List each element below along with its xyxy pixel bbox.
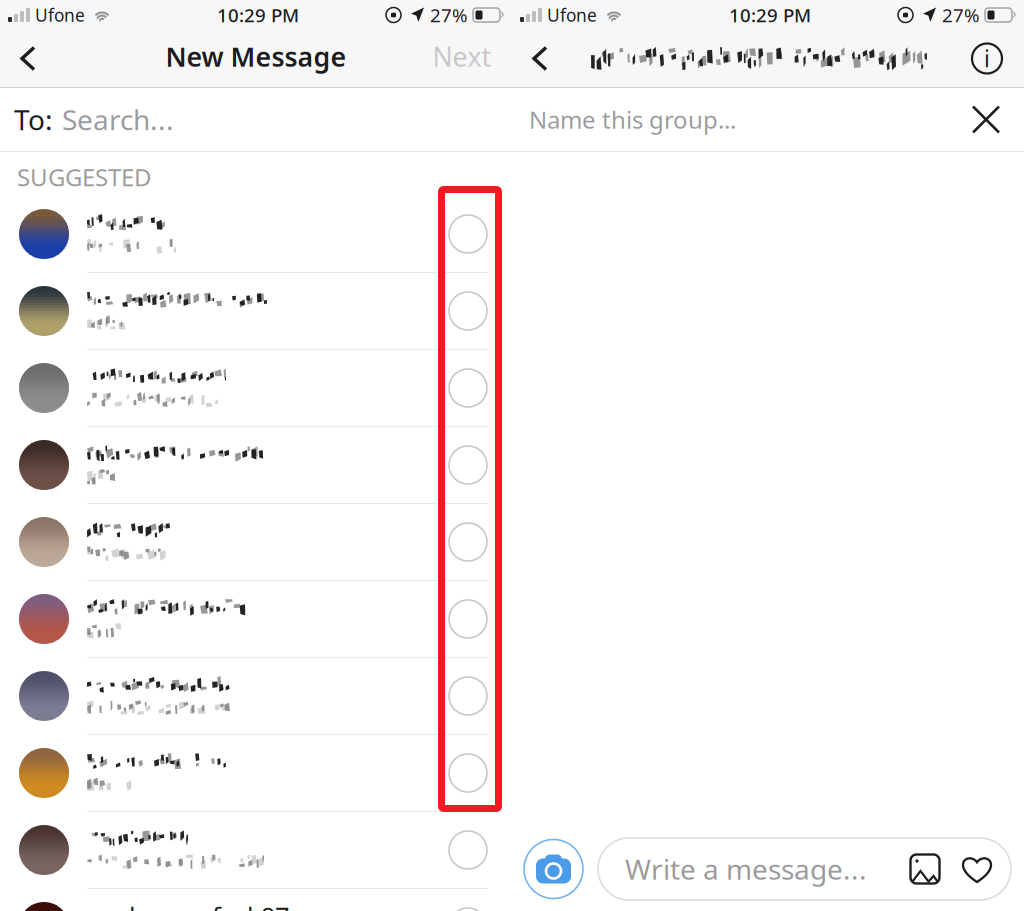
staticText: To: xyxy=(14,101,53,138)
button[interactable]: Back xyxy=(512,30,568,87)
button[interactable]: Back xyxy=(0,30,56,87)
button[interactable]: Next xyxy=(426,30,498,87)
staticText: New Message xyxy=(165,39,346,74)
button[interactable]: Clear name xyxy=(964,97,1008,141)
staticText: Write a message... xyxy=(625,850,867,888)
button[interactable] xyxy=(0,273,512,349)
button[interactable] xyxy=(0,504,512,580)
staticText: Next xyxy=(432,39,491,74)
button[interactable]: usahoop.afzal.97 xyxy=(0,889,512,911)
staticText: i xyxy=(984,43,990,73)
staticText: Ufone xyxy=(35,3,85,26)
button[interactable]: Open camera xyxy=(524,839,583,898)
button[interactable] xyxy=(0,427,512,503)
button[interactable] xyxy=(0,196,512,272)
staticText: 27% xyxy=(942,3,980,27)
button[interactable] xyxy=(0,658,512,734)
button[interactable] xyxy=(0,581,512,657)
staticText: 27% xyxy=(430,3,468,27)
staticText: 10:29 PM xyxy=(729,3,811,27)
button[interactable] xyxy=(0,812,512,888)
button[interactable]: Conversation info xyxy=(962,30,1012,87)
staticText: Name this group... xyxy=(529,104,736,135)
staticText: 10:29 PM xyxy=(217,3,299,27)
staticText: Ufone xyxy=(547,3,597,26)
staticText: SUGGESTED xyxy=(17,161,152,193)
button[interactable] xyxy=(0,735,512,811)
staticText: usahoop.afzal.97 xyxy=(87,899,289,911)
button[interactable]: Write a message... xyxy=(598,838,1011,900)
staticText: Search... xyxy=(62,101,174,138)
button[interactable] xyxy=(0,350,512,426)
